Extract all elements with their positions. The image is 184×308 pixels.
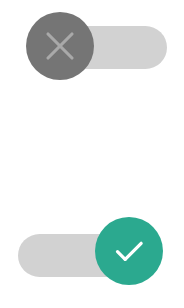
button[interactable]: Turn on [26, 12, 94, 80]
button[interactable]: Turn off [95, 217, 163, 285]
